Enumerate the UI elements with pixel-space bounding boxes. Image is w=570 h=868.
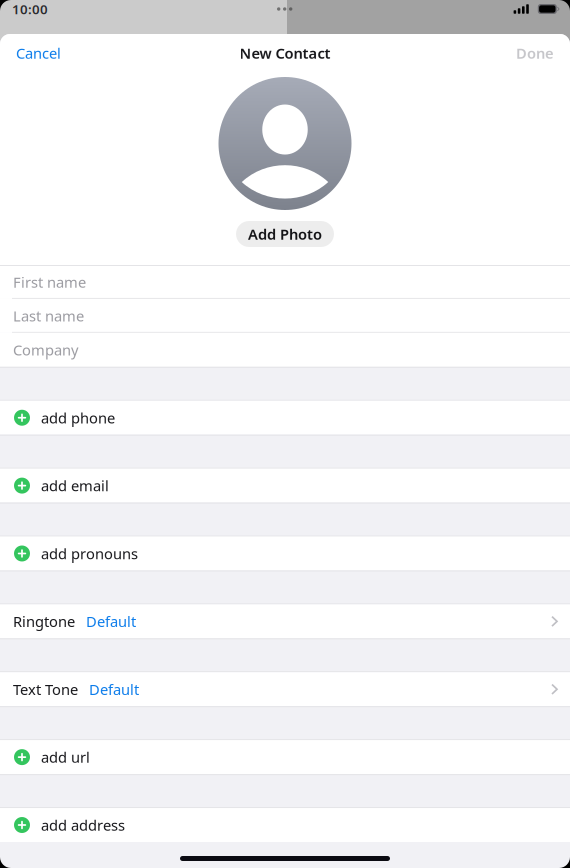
staticText: add phone (41, 408, 115, 427)
staticText: Company (13, 340, 78, 360)
button[interactable]: First name (0, 265, 570, 299)
staticText: Cancel (16, 43, 61, 63)
button[interactable]: Cancel (0, 34, 73, 72)
staticText: New Contact (239, 43, 330, 63)
staticText: add address (41, 815, 125, 835)
button[interactable]: add phone (0, 401, 570, 435)
staticText: Default (86, 612, 136, 631)
staticText: add pronouns (41, 544, 138, 563)
staticText: 10:00 (12, 0, 48, 18)
staticText: add email (41, 476, 109, 495)
button[interactable]: Last name (0, 299, 570, 333)
button[interactable]: Add Photo (236, 221, 334, 247)
button[interactable]: Ringtone (0, 604, 570, 638)
button[interactable]: Done (504, 34, 570, 72)
staticText: Add Photo (248, 224, 322, 244)
staticText: Last name (13, 306, 84, 326)
staticText: Text Tone (13, 679, 78, 699)
button[interactable]: add email (0, 469, 570, 502)
button[interactable]: add url (0, 740, 570, 774)
button[interactable]: add address (0, 808, 570, 842)
staticText: Default (89, 679, 139, 699)
button[interactable]: Company (0, 333, 570, 367)
button[interactable]: add pronouns (0, 536, 570, 570)
staticText: First name (13, 272, 86, 292)
staticText: Ringtone (13, 612, 75, 631)
button[interactable]: Text Tone (0, 672, 570, 706)
staticText: add url (41, 747, 90, 767)
staticText: Done (516, 43, 554, 63)
